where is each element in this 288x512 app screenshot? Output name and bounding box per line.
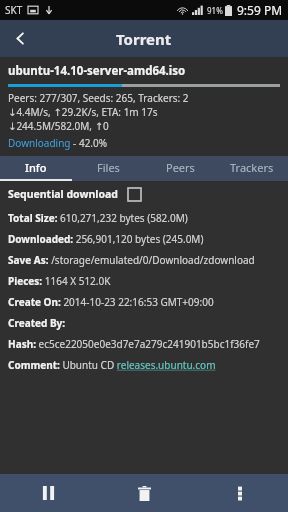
staticText: Downloading - 42.0% xyxy=(8,136,108,150)
button[interactable]: Pause xyxy=(0,474,96,512)
staticText: Trackers xyxy=(230,160,274,175)
staticText: Torrent xyxy=(116,29,172,49)
button[interactable]: Back xyxy=(0,20,40,57)
staticText: Created By: xyxy=(8,316,66,330)
staticText: Peers: 277/307, Seeds: 265, Trackers: 2 xyxy=(8,91,189,105)
button[interactable]: Info xyxy=(0,156,72,179)
staticText: Info xyxy=(25,160,47,175)
button[interactable]: More options xyxy=(192,474,288,512)
staticText: 9:59 PM xyxy=(237,2,283,18)
staticText: ubuntu-14.10-server-amd64.iso xyxy=(8,63,186,79)
staticText: Comment: Ubuntu CD releases.ubuntu.com xyxy=(8,358,216,372)
staticText: Downloaded: 256,901,120 bytes (245.0M) xyxy=(8,232,204,246)
staticText: Pieces: 1164 X 512.0K xyxy=(8,274,111,288)
button[interactable]: Peers xyxy=(144,156,216,179)
button[interactable]: Sequential download xyxy=(0,181,288,207)
staticText: Peers xyxy=(166,160,195,175)
staticText: SKT xyxy=(5,3,23,17)
staticText: Hash: ec5ce22050e0e3d7e7a279c241901b5bc1… xyxy=(8,337,260,351)
staticText: ↓4.4M/s, ↑29.2K/s, ETA: 1m 17s xyxy=(8,105,158,119)
button[interactable]: Delete xyxy=(96,474,192,512)
staticText: Create On: 2014-10-23 22:16:53 GMT+09:00 xyxy=(8,295,214,309)
staticText: Files xyxy=(97,160,120,175)
staticText: 91% xyxy=(207,5,223,16)
staticText: Save As: /storage/emulated/0/Download/zd… xyxy=(8,253,255,267)
button[interactable]: Trackers xyxy=(216,156,288,179)
button[interactable]: Files xyxy=(72,156,144,179)
staticText: Total Size: 610,271,232 bytes (582.0M) xyxy=(8,211,188,225)
staticText: Sequential download xyxy=(8,187,118,201)
staticText: ↓244.5M/582.0M, ↑0 xyxy=(8,119,109,133)
